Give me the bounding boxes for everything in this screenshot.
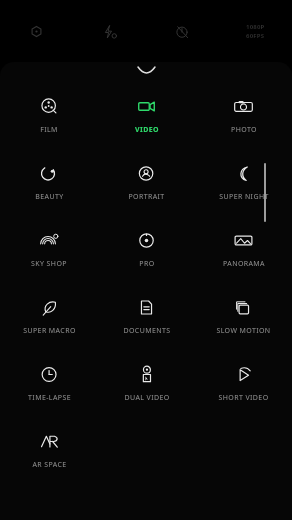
staticText: VIDEO [135, 125, 159, 135]
staticText: DOCUMENTS [123, 326, 171, 336]
staticText: PANORAMA [223, 259, 265, 269]
button[interactable]: BEAUTY [0, 152, 98, 219]
button[interactable]: SKY SHOP [0, 219, 98, 286]
button[interactable]: SHORT VIDEO [195, 353, 292, 420]
button[interactable]: TIME-LAPSE [0, 353, 98, 420]
button[interactable]: Timer off [146, 0, 219, 62]
button[interactable]: PORTRAIT [98, 152, 195, 219]
button[interactable]: DUAL VIDEO [98, 353, 195, 420]
staticText: 60FPS [246, 32, 265, 40]
staticText: 1080P [246, 23, 265, 31]
button[interactable]: SUPER NIGHT [195, 152, 292, 219]
staticText: DUAL VIDEO [124, 393, 170, 403]
button[interactable]: SUPER MACRO [0, 286, 98, 353]
button[interactable]: PRO [98, 219, 195, 286]
button[interactable]: FILM [0, 85, 98, 152]
staticText: BEAUTY [35, 192, 64, 202]
button[interactable]: Collapse mode list [128, 63, 164, 77]
button[interactable]: SLOW MOTION [195, 286, 292, 353]
staticText: PORTRAIT [128, 192, 165, 202]
staticText: AR SPACE [32, 460, 67, 470]
staticText: SUPER NIGHT [219, 192, 269, 202]
button[interactable]: PHOTO [195, 85, 292, 152]
button[interactable]: DOCUMENTS [98, 286, 195, 353]
button[interactable]: Video quality 1080P 60FPS [219, 0, 292, 62]
staticText: SLOW MOTION [216, 326, 271, 336]
staticText: FILM [40, 125, 58, 135]
button[interactable]: AR SPACE [0, 420, 98, 487]
button[interactable]: AI scene detection [0, 0, 73, 62]
staticText: PHOTO [231, 125, 257, 135]
button[interactable]: VIDEO [98, 85, 195, 152]
staticText: SHORT VIDEO [218, 393, 269, 403]
staticText: SKY SHOP [31, 259, 67, 269]
staticText: TIME-LAPSE [28, 393, 71, 403]
staticText: SUPER MACRO [23, 326, 76, 336]
staticText: PRO [139, 259, 155, 269]
button[interactable]: PANORAMA [195, 219, 292, 286]
button[interactable]: Flash off [73, 0, 146, 62]
